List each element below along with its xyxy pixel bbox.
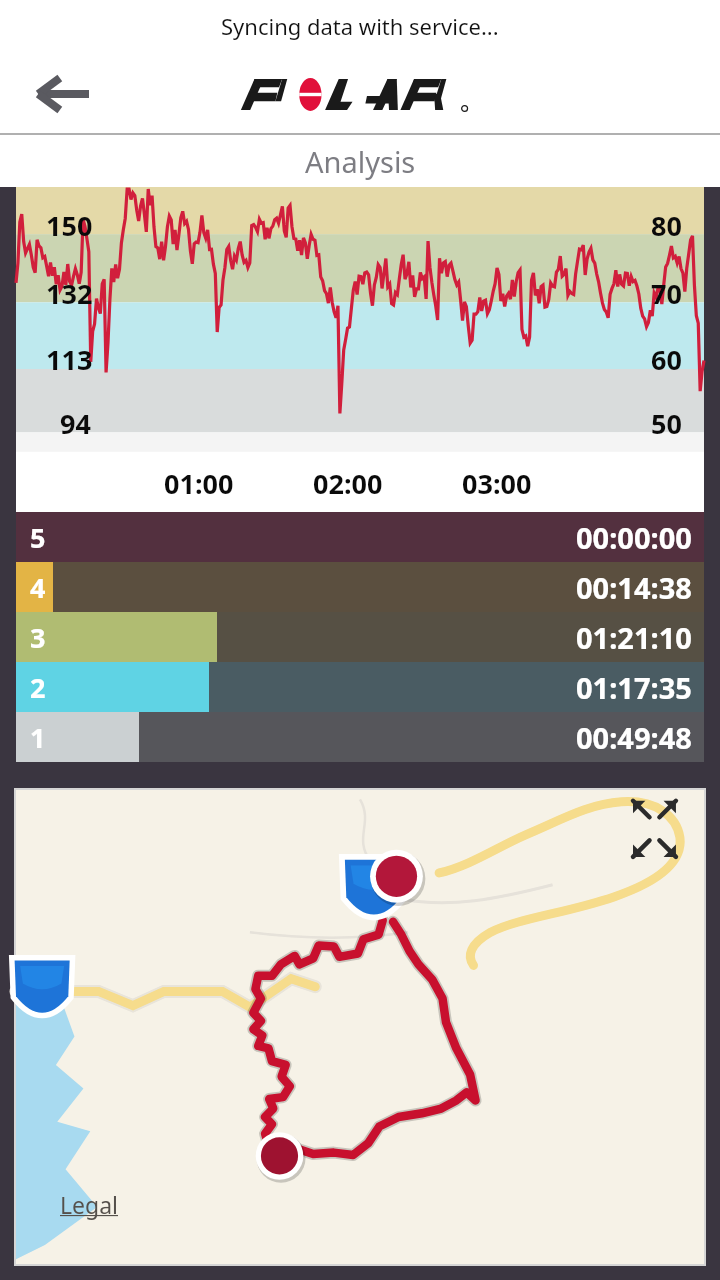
staticText: 00:14:38 (576, 568, 692, 607)
staticText: 01:17:35 (576, 668, 692, 707)
staticText: 113 (46, 341, 93, 378)
staticText: 1 (30, 719, 46, 756)
staticText: Analysis (305, 142, 416, 181)
staticText: 94 (60, 405, 91, 442)
staticText: Syncing data with service... (221, 11, 499, 41)
button[interactable]: 4 (16, 562, 704, 612)
button[interactable]: Expand map (632, 802, 690, 860)
staticText: 3 (30, 619, 46, 656)
staticText: 01:21:10 (576, 618, 692, 657)
staticText: 80 (651, 207, 682, 244)
staticText: 03:00 (462, 465, 532, 502)
staticText: 00:49:48 (576, 718, 692, 757)
button[interactable]: 5 (16, 512, 704, 562)
staticText: 132 (46, 275, 93, 312)
staticText: 2 (30, 669, 46, 706)
staticText: 70 (651, 275, 682, 312)
button[interactable]: Legal (16, 790, 704, 1264)
staticText: 02:00 (313, 465, 383, 502)
button[interactable]: Legal (60, 1189, 119, 1220)
button[interactable]: Back (24, 64, 100, 124)
button[interactable]: 150 (16, 187, 704, 512)
staticText: 5 (30, 519, 46, 556)
button[interactable]: 3 (16, 612, 704, 662)
staticText: 150 (46, 207, 93, 244)
button[interactable]: 1 (16, 712, 704, 762)
button[interactable]: 2 (16, 662, 704, 712)
staticText: 4 (30, 569, 46, 606)
staticText: 01:00 (164, 465, 234, 502)
staticText: 60 (651, 341, 682, 378)
staticText: 50 (651, 405, 682, 442)
staticText: 00:00:00 (576, 518, 692, 557)
